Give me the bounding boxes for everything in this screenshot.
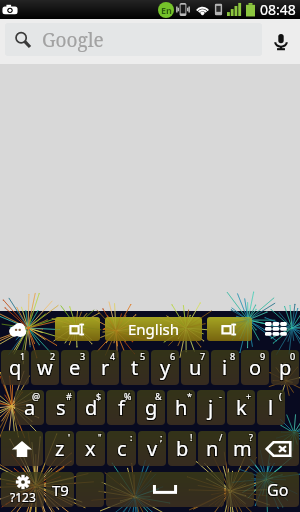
staticText: z — [56, 434, 66, 461]
button[interactable]: b — [168, 431, 196, 466]
button[interactable]: f — [107, 390, 135, 425]
button[interactable]: Switch input method — [207, 317, 252, 341]
button[interactable]: e — [61, 350, 89, 385]
staticText: 8 — [231, 349, 237, 361]
button[interactable]: y — [151, 350, 179, 385]
staticText: : — [131, 432, 134, 444]
button[interactable]: r — [91, 350, 119, 385]
button[interactable]: Emoji — [0, 311, 35, 347]
staticText: v — [147, 435, 158, 462]
staticText: h — [175, 394, 188, 421]
button[interactable]: v — [138, 431, 166, 466]
button[interactable]: m — [228, 431, 256, 466]
staticText: Go — [268, 478, 290, 500]
staticText: s — [56, 394, 66, 421]
button[interactable]: g — [137, 390, 165, 425]
staticText: ! — [191, 430, 194, 442]
staticText: ?123 — [10, 489, 36, 505]
staticText: 8 — [230, 350, 236, 362]
staticText: / — [220, 430, 224, 442]
button[interactable]: s — [46, 390, 75, 425]
staticText: r — [102, 353, 111, 380]
staticText: m — [234, 436, 253, 463]
button[interactable]: j — [197, 390, 225, 425]
button[interactable]: Shift — [1, 431, 43, 466]
staticText: $ — [96, 390, 102, 402]
staticText: 0 — [291, 349, 297, 361]
button[interactable]: Keypad — [252, 311, 300, 347]
staticText: j — [208, 394, 214, 421]
staticText: a — [25, 395, 37, 422]
button[interactable]: k — [227, 390, 255, 425]
staticText: 6 — [169, 351, 175, 363]
staticText: Go — [266, 480, 288, 502]
button[interactable]: t — [121, 350, 149, 385]
staticText: 9 — [260, 350, 266, 362]
button[interactable]: p — [271, 350, 299, 385]
staticText: ( — [280, 389, 283, 401]
button[interactable]: z — [45, 431, 74, 466]
button[interactable]: English — [105, 317, 202, 341]
button[interactable]: d — [77, 390, 105, 425]
button[interactable]: o — [241, 350, 269, 385]
staticText: 7 — [201, 351, 207, 363]
staticText: w — [38, 353, 54, 380]
staticText: o — [248, 355, 261, 382]
button[interactable]: x — [76, 431, 105, 466]
staticText: h — [174, 395, 187, 422]
button[interactable]: a — [15, 390, 44, 425]
button[interactable]: Emoticons — [76, 472, 104, 507]
staticText: 7 — [199, 351, 205, 363]
staticText: 5 — [140, 350, 146, 362]
staticText: t — [131, 354, 139, 381]
staticText: z — [54, 436, 64, 463]
staticText: f — [119, 393, 126, 420]
staticText: Go — [267, 479, 289, 501]
button[interactable]: c — [107, 431, 136, 466]
staticText: - — [220, 389, 223, 401]
button[interactable]: Google — [5, 23, 262, 56]
staticText: o — [250, 355, 263, 382]
button[interactable]: Switch input method — [55, 317, 100, 341]
staticText: 2 — [51, 351, 57, 363]
button[interactable]: u — [181, 350, 209, 385]
button[interactable]: Space — [106, 472, 224, 507]
staticText: v — [148, 436, 159, 463]
button[interactable]: Comma — [226, 472, 254, 507]
staticText: q — [10, 355, 23, 382]
staticText: y — [161, 355, 172, 382]
button[interactable]: Go — [256, 472, 299, 507]
button[interactable]: l — [257, 390, 285, 425]
staticText: x — [84, 436, 95, 463]
staticText: n — [207, 434, 220, 461]
staticText: d — [86, 393, 99, 420]
staticText: ? — [248, 432, 252, 444]
staticText: T9 — [53, 481, 70, 501]
staticText: p — [279, 354, 292, 381]
staticText: k — [237, 393, 248, 420]
button[interactable]: Camera — [1, 1, 19, 19]
staticText: : — [130, 431, 133, 443]
staticText: g — [146, 393, 159, 420]
staticText: 6 — [170, 350, 176, 362]
staticText: d — [84, 395, 97, 422]
staticText: 3 — [80, 350, 86, 362]
staticText: p — [280, 355, 293, 382]
staticText: 8 — [229, 351, 235, 363]
staticText: j — [209, 393, 215, 420]
button[interactable]: Voice search — [262, 22, 300, 62]
staticText: - — [219, 390, 222, 402]
button[interactable]: q — [1, 350, 29, 385]
button[interactable]: T9 — [46, 472, 74, 507]
staticText: ?123 — [11, 488, 37, 504]
staticText: u — [190, 355, 203, 382]
button[interactable]: n — [198, 431, 226, 466]
staticText: n — [206, 435, 219, 462]
staticText: h — [176, 395, 189, 422]
button[interactable]: w — [31, 350, 59, 385]
staticText: @ — [31, 391, 40, 403]
button[interactable]: h — [167, 390, 195, 425]
button[interactable]: Delete — [258, 431, 299, 466]
button[interactable]: ?123 — [1, 472, 44, 507]
button[interactable]: i — [211, 350, 239, 385]
